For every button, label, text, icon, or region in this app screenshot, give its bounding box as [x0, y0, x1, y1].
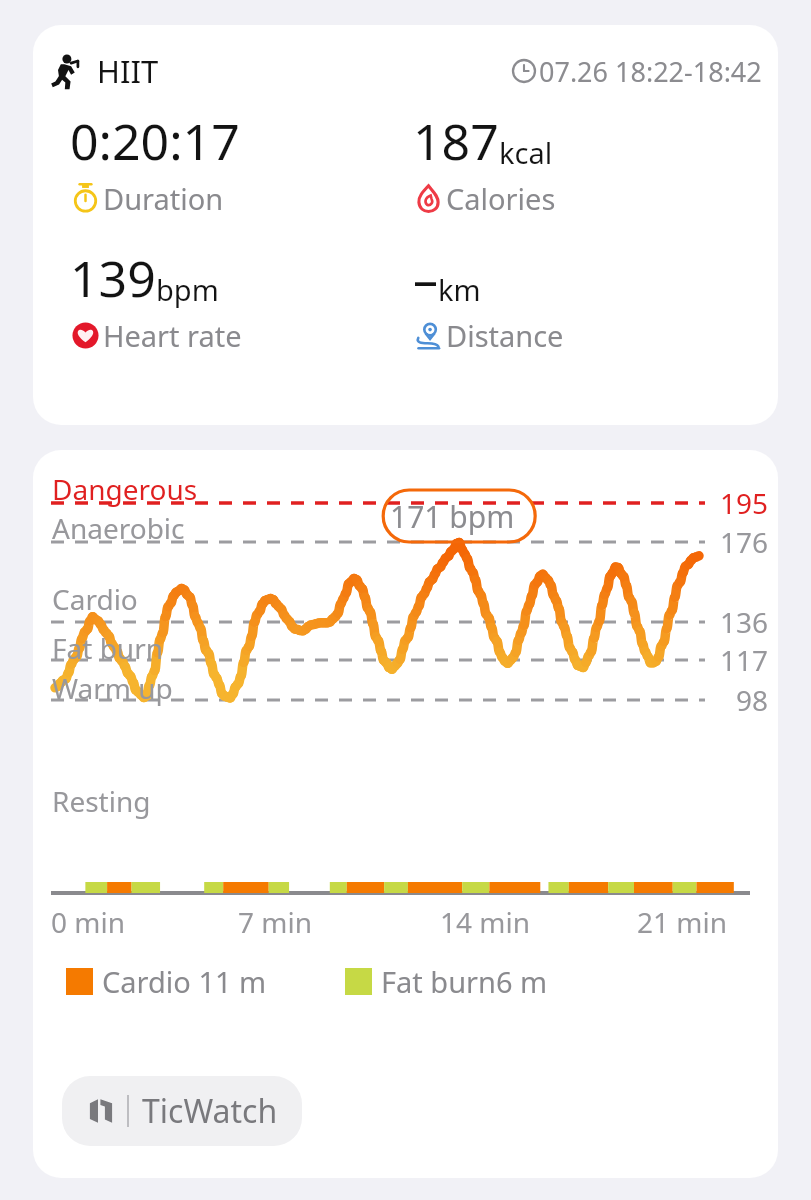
staticText: km [438, 270, 481, 309]
staticText: Resting [52, 782, 151, 820]
staticText: 07.26 18:22-18:42 [539, 53, 762, 90]
button[interactable]: Fat burn6 m [345, 962, 548, 1001]
staticText: 136 [720, 603, 769, 641]
staticText: HIIT [97, 50, 159, 92]
other: Workout type [47, 49, 91, 93]
staticText: 117 [720, 641, 769, 679]
button[interactable]: Cardio 11 m [66, 962, 267, 1001]
staticText: 195 [720, 484, 769, 522]
staticText: 0:20:17 [70, 107, 240, 175]
staticText: TicWatch [142, 1089, 278, 1133]
staticText: 139 [70, 244, 156, 312]
button[interactable]: – [413, 244, 778, 355]
staticText: 98 [736, 681, 769, 719]
staticText: 187 [413, 107, 499, 175]
button[interactable]: 139 [70, 244, 405, 355]
staticText: kcal [499, 133, 553, 172]
staticText: 171 bpm [390, 496, 515, 537]
other: TicWatch [86, 1096, 116, 1126]
staticText: 14 min [440, 903, 531, 941]
staticText: Fat burn [52, 629, 164, 667]
staticText: Heart rate [103, 316, 242, 355]
staticText: 0 min [51, 903, 126, 941]
staticText: Anaerobic [52, 509, 185, 547]
button[interactable]: TicWatch [62, 1076, 302, 1146]
staticText: 7 min [238, 903, 313, 941]
staticText: Warm up [52, 669, 173, 707]
staticText: Fat burn6 m [381, 962, 548, 1001]
staticText: – [413, 244, 438, 312]
button[interactable]: 0:20:17 [70, 107, 405, 218]
staticText: 176 [720, 523, 769, 561]
staticText: 21 min [637, 903, 728, 941]
staticText: Calories [446, 179, 556, 218]
staticText: Cardio 11 m [102, 962, 267, 1001]
staticText: Cardio [52, 580, 138, 618]
staticText: Duration [103, 179, 224, 218]
staticText: Dangerous [52, 470, 198, 508]
button[interactable]: 187 [413, 107, 778, 218]
staticText: Distance [446, 316, 564, 355]
staticText: bpm [156, 270, 219, 309]
